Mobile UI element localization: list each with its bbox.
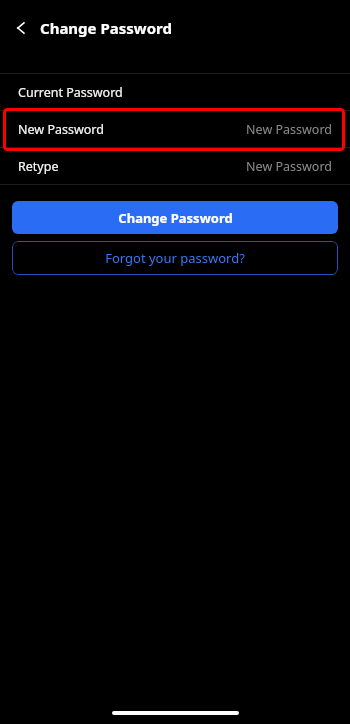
staticText: Retype [18, 158, 59, 175]
staticText: New Password [246, 121, 332, 138]
button[interactable]: Retype [0, 148, 350, 184]
staticText: Forgot your password? [105, 249, 245, 267]
staticText: New Password [18, 121, 104, 138]
button[interactable]: Change Password [12, 201, 338, 234]
button[interactable]: New Password [0, 111, 350, 147]
staticText: Change Password [40, 18, 172, 38]
staticText: New Password [246, 158, 332, 175]
button[interactable]: Back [8, 14, 36, 42]
staticText: Current Password [18, 84, 123, 101]
staticText: Change Password [118, 209, 233, 227]
button[interactable]: Forgot your password? [12, 241, 338, 275]
button[interactable]: Current Password [0, 74, 350, 110]
